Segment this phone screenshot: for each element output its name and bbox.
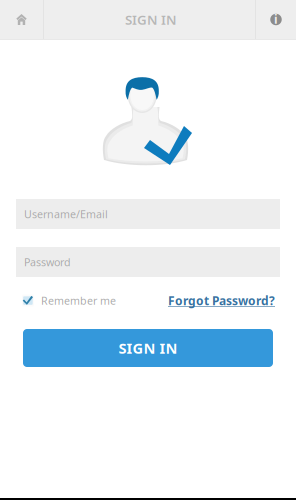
staticText: i (274, 11, 278, 27)
staticText: Forgot Password? (168, 292, 275, 308)
button[interactable]: Home (0, 0, 43, 39)
staticText: Username/Email (24, 207, 108, 221)
staticText: SIGN IN (125, 11, 177, 28)
button[interactable]: Remember me (22, 294, 116, 307)
button[interactable]: Forgot Password? (168, 294, 275, 307)
staticText: SIGN IN (118, 338, 177, 358)
button[interactable]: Info (256, 0, 296, 39)
staticText: Remember me (41, 293, 116, 308)
staticText: Password (24, 255, 71, 269)
button[interactable]: SIGN IN (23, 329, 273, 367)
